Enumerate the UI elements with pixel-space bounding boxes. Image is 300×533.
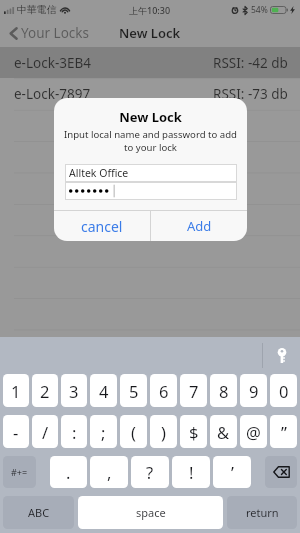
button[interactable]: : [61,415,87,448]
button[interactable]: / [32,415,58,448]
staticText: ’ [231,461,234,483]
staticText: RSSI: -73 db [213,85,288,103]
button[interactable]: Passwords [263,337,300,374]
staticText: & [217,421,230,443]
staticText: New Lock [119,24,181,42]
button[interactable]: @ [240,415,267,448]
staticText: ( [131,421,136,443]
staticText: New Lock [54,108,247,126]
staticText: 0 [279,380,289,402]
button[interactable]: 8 [210,374,237,407]
staticText: ” [281,421,287,443]
staticText: ? [146,461,154,483]
staticText: 8 [219,380,229,402]
staticText: cancel [81,217,123,236]
staticText: 5 [129,380,139,402]
staticText: space [136,505,166,520]
staticText: 54% [251,4,268,16]
staticText: e-Lock-7897 [14,85,91,103]
button[interactable] [66,183,236,199]
staticText: 中華電信 [17,4,57,16]
staticText: 4 [99,380,109,402]
staticText: 1 [11,380,21,402]
staticText: : [72,421,77,443]
button[interactable]: & [210,415,237,448]
staticText: Your Locks [21,24,89,42]
staticText: , [107,461,112,483]
button[interactable]: 0 [270,374,297,407]
staticText: #+= [11,466,28,478]
button[interactable]: ( [120,415,147,448]
button[interactable]: e-Lock-3EB4 [0,47,300,78]
button[interactable]: 6 [150,374,177,407]
staticText: Input local name and password to add to … [56,128,245,153]
staticText: 7 [189,380,199,402]
button[interactable]: 4 [90,374,117,407]
button[interactable]: space [78,496,223,529]
staticText: 9 [249,380,259,402]
button[interactable]: 2 [32,374,58,407]
staticText: ) [161,421,166,443]
staticText: 2 [40,380,50,402]
staticText: ABC [28,505,50,520]
button[interactable]: Alltek Office [66,165,236,181]
button[interactable]: ! [172,456,210,488]
button[interactable]: , [90,456,128,488]
button[interactable]: 3 [61,374,87,407]
staticText: . [66,461,71,483]
button[interactable]: 7 [180,374,207,407]
button[interactable]: ; [90,415,117,448]
button[interactable]: Backspace [265,456,297,488]
button[interactable]: ) [150,415,177,448]
button[interactable]: Add [151,211,247,241]
button[interactable]: ABC [3,496,74,529]
button[interactable]: 9 [240,374,267,407]
staticText: return [246,505,279,520]
staticText: Alltek Office [69,166,129,180]
staticText: 6 [159,380,169,402]
button[interactable]: $ [180,415,207,448]
staticText: RSSI: -42 db [213,54,288,72]
button[interactable]: . [50,456,87,488]
staticText: Add [187,217,212,235]
staticText: 3 [69,380,79,402]
staticText: e-Lock-3EB4 [14,54,91,72]
staticText: ; [101,421,106,443]
button[interactable]: ” [270,415,297,448]
staticText: / [42,421,49,443]
staticText: @ [246,421,261,443]
button[interactable]: Your Locks [0,21,95,45]
button[interactable]: 5 [120,374,147,407]
button[interactable]: cancel [54,211,150,241]
button[interactable]: ? [131,456,169,488]
button[interactable]: ’ [213,456,251,488]
button[interactable]: return [227,496,297,529]
button[interactable]: #+= [3,456,36,488]
staticText: - [13,421,19,443]
button[interactable]: e-Lock-7897 [0,78,300,109]
staticText: $ [189,421,199,443]
staticText: 上午10:30 [129,4,171,16]
button[interactable]: 1 [3,374,29,407]
staticText: ! [189,461,194,483]
button[interactable]: - [3,415,29,448]
